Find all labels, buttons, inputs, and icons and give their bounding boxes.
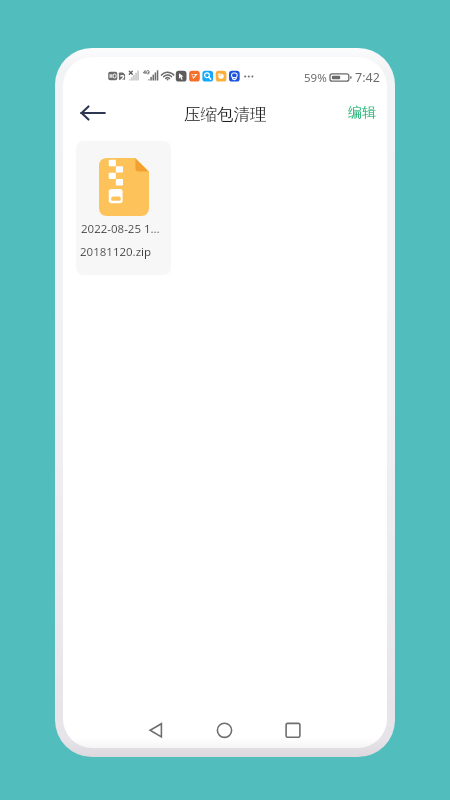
button[interactable]: Recents [279, 712, 387, 748]
button[interactable]: Back [63, 712, 171, 748]
button[interactable]: 2022-08-25 1… [76, 141, 171, 275]
button[interactable]: Back [71, 91, 115, 135]
button[interactable]: 编辑 [340, 96, 384, 130]
staticText: 59% [304, 70, 327, 86]
staticText: 2022-08-25 1… [81, 221, 160, 237]
staticText: 压缩包清理 [184, 104, 267, 125]
staticText: 7:42 [355, 69, 380, 86]
staticText: 编辑 [348, 104, 376, 122]
staticText: 2 [120, 72, 125, 83]
button[interactable]: Home [171, 712, 279, 748]
staticText: 20181120.zip [80, 244, 152, 260]
